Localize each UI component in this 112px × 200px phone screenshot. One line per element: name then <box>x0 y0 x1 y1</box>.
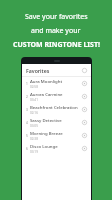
staticText: 2 <box>26 95 28 99</box>
staticText: Aura Moonlight <box>30 78 63 84</box>
button[interactable]: 2 <box>22 90 91 103</box>
staticText: 03:41 <box>30 98 38 102</box>
button[interactable]: More options <box>81 67 88 74</box>
staticText: 02:16 <box>30 111 38 115</box>
staticText: 4 <box>26 121 28 125</box>
button[interactable]: Ringtone options <box>81 145 88 152</box>
button[interactable]: 3 <box>22 103 91 116</box>
staticText: Aurora Carmine <box>30 91 63 97</box>
button[interactable]: 5 <box>22 129 91 142</box>
button[interactable]: Ringtone options <box>81 80 88 87</box>
staticText: 3 <box>26 108 28 112</box>
staticText: Beachfront Celebration <box>30 104 78 110</box>
staticText: 02:58 <box>30 85 38 89</box>
button[interactable]: 4 <box>22 116 91 129</box>
staticText: Morning Breeze <box>30 130 63 136</box>
button[interactable]: Ringtone options <box>81 132 88 139</box>
button[interactable]: 6 <box>22 142 91 155</box>
button[interactable]: Favorites <box>22 64 91 76</box>
staticText: 5 <box>26 134 28 138</box>
button[interactable]: Ringtone options <box>81 119 88 126</box>
staticText: 03:05 <box>30 124 38 128</box>
staticText: Sassy Detective <box>30 117 62 123</box>
staticText: 1 <box>26 82 28 86</box>
button[interactable]: 1 <box>22 77 91 90</box>
button[interactable]: Ringtone options <box>81 106 88 113</box>
staticText: and make your <box>31 26 81 36</box>
staticText: 6 <box>26 147 28 151</box>
button[interactable]: Ringtone options <box>81 93 88 100</box>
staticText: CUSTOM RINGTONE LIST! <box>13 40 100 50</box>
staticText: Disco Lounge <box>30 143 58 149</box>
staticText: Save your favorites <box>25 12 88 22</box>
staticText: 03:19 <box>30 150 38 154</box>
staticText: 02:38 <box>30 137 38 141</box>
staticText: Favorites <box>26 67 50 74</box>
